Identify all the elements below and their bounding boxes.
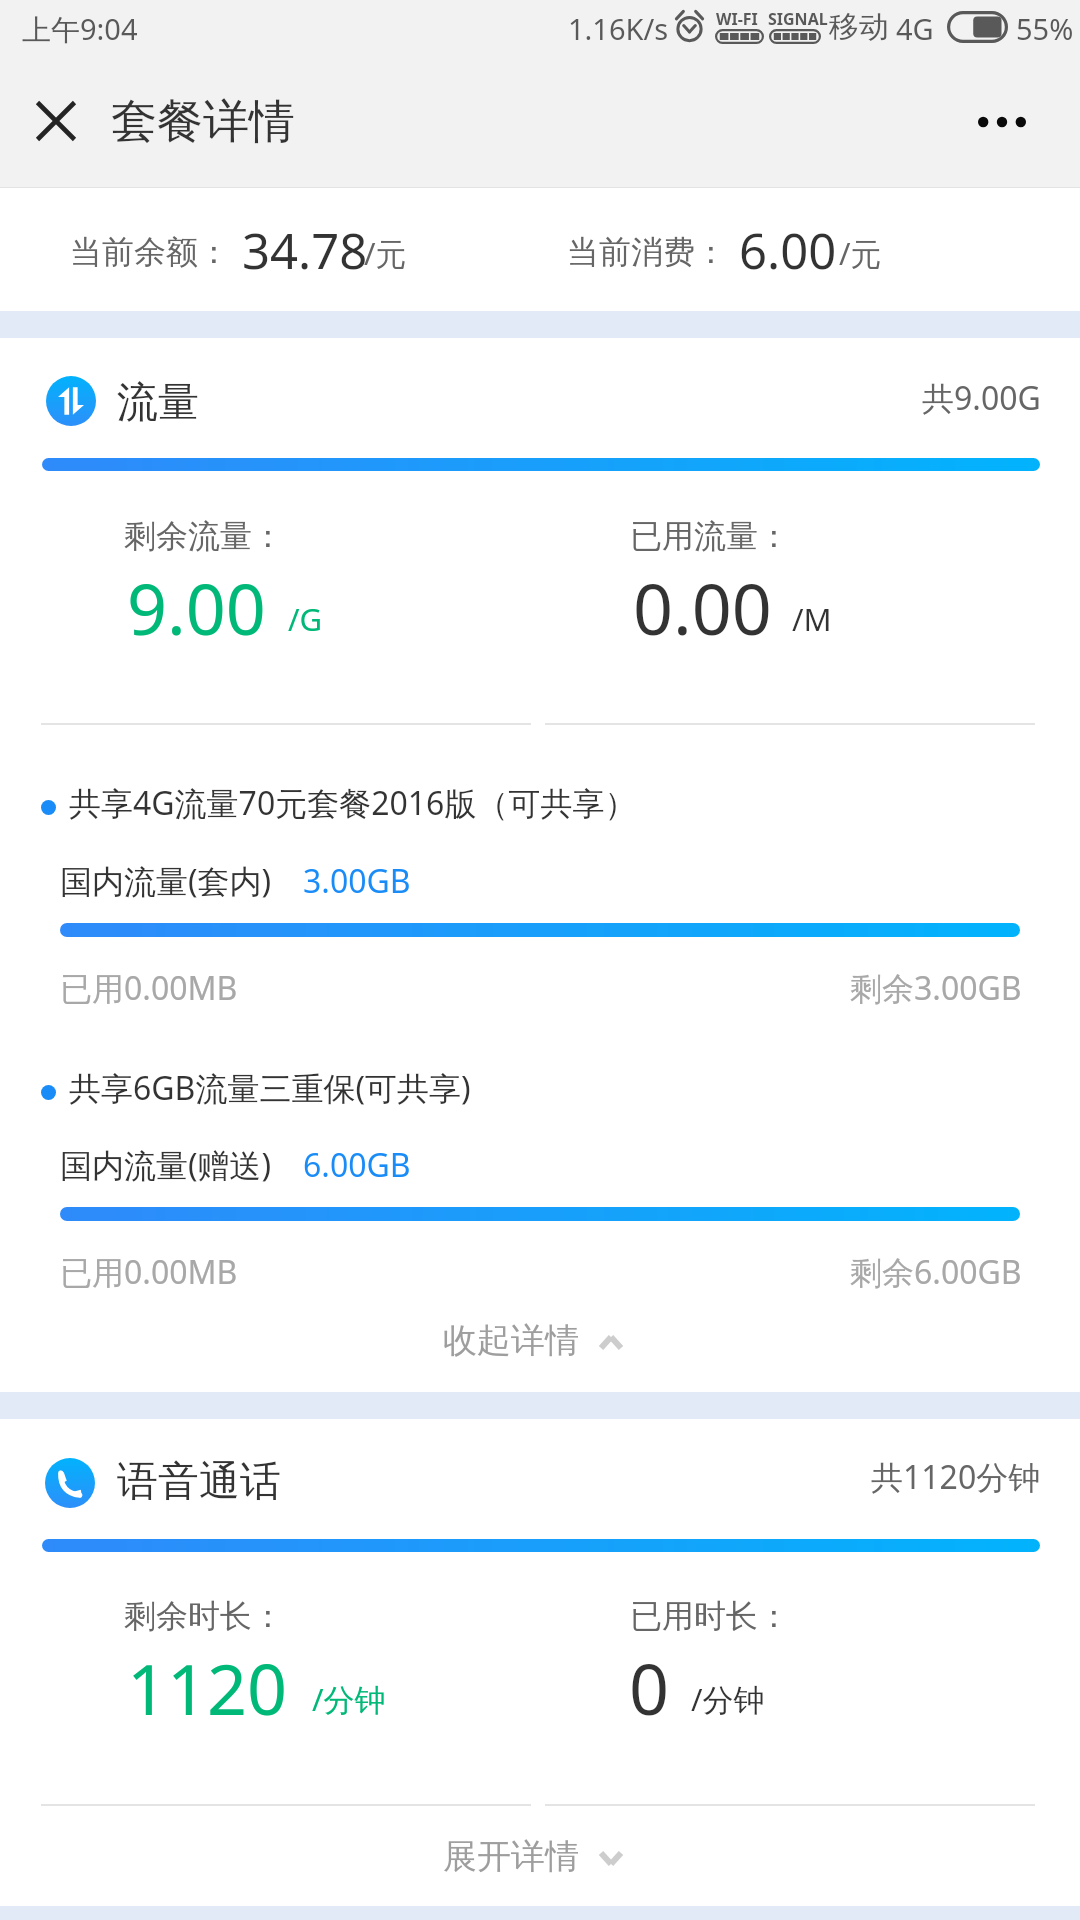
- button[interactable]: Close: [14, 79, 98, 163]
- staticText: /G: [288, 598, 323, 640]
- staticText: /分钟: [691, 1678, 765, 1720]
- staticText: 已用0.00MB: [60, 966, 238, 1010]
- staticText: 6.00GB: [303, 1143, 411, 1187]
- staticText: 1120: [127, 1640, 288, 1735]
- staticText: WI-FI: [716, 8, 758, 30]
- staticText: 已用0.00MB: [60, 1250, 238, 1294]
- staticText: 0.00: [633, 560, 772, 655]
- staticText: /元: [839, 232, 882, 274]
- staticText: 剩余流量：: [124, 516, 284, 556]
- button[interactable]: 收起详情: [0, 1301, 1080, 1377]
- staticText: 34.78: [242, 217, 368, 284]
- staticText: 当前余额：: [70, 232, 230, 272]
- staticText: 国内流量(赠送): [60, 1143, 272, 1187]
- staticText: 剩余时长：: [124, 1596, 284, 1636]
- staticText: 已用时长：: [630, 1596, 790, 1636]
- button[interactable]: 展开详情: [0, 1817, 1080, 1893]
- staticText: 移动: [829, 8, 889, 46]
- staticText: 6.00: [739, 217, 837, 284]
- staticText: 语音通话: [117, 1456, 281, 1508]
- staticText: /分钟: [312, 1678, 386, 1720]
- staticText: 套餐详情: [111, 93, 295, 151]
- staticText: 展开详情: [443, 1835, 579, 1878]
- staticText: 已用流量：: [630, 516, 790, 556]
- staticText: 共享4G流量70元套餐2016版（可共享）: [69, 781, 637, 825]
- staticText: 3.00GB: [303, 859, 411, 903]
- staticText: 9.00: [127, 560, 266, 655]
- staticText: 55%: [1016, 9, 1074, 48]
- staticText: /元: [364, 232, 407, 274]
- button[interactable]: More options: [960, 80, 1043, 163]
- staticText: 收起详情: [443, 1319, 579, 1362]
- staticText: 剩余3.00GB: [850, 966, 1022, 1010]
- staticText: 共9.00G: [922, 376, 1041, 420]
- staticText: 剩余6.00GB: [850, 1250, 1022, 1294]
- staticText: 0: [629, 1640, 670, 1735]
- staticText: /M: [792, 598, 832, 640]
- staticText: SIGNAL: [768, 8, 828, 30]
- staticText: 流量: [117, 377, 199, 429]
- staticText: 上午9:04: [22, 9, 138, 49]
- staticText: 4G: [896, 9, 934, 48]
- staticText: 国内流量(套内): [60, 859, 272, 903]
- staticText: 共享6GB流量三重保(可共享): [69, 1066, 471, 1110]
- staticText: 当前消费：: [567, 232, 727, 272]
- staticText: 1.16K/s: [568, 9, 669, 48]
- staticText: 共1120分钟: [871, 1455, 1041, 1499]
